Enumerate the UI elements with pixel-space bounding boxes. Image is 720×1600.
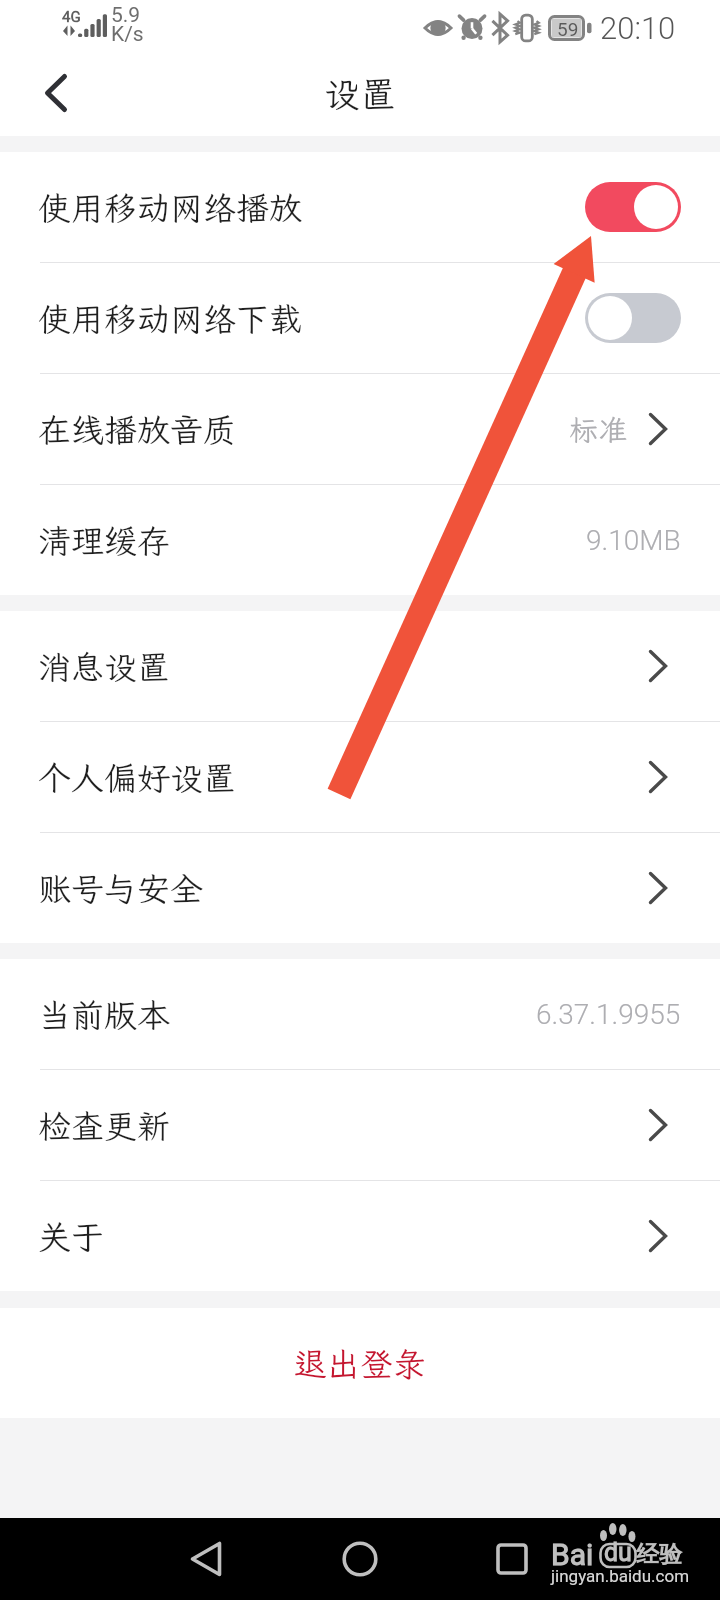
staticText: 使用移动网络下载 bbox=[38, 297, 302, 340]
button[interactable]: 账号与安全 bbox=[0, 833, 720, 943]
staticText: 4G bbox=[62, 8, 81, 26]
button[interactable]: Back bbox=[166, 1524, 246, 1594]
staticText: 账号与安全 bbox=[38, 867, 203, 910]
staticText: 退出登录 bbox=[294, 1342, 426, 1385]
staticText: 9.10MB bbox=[586, 524, 681, 557]
staticText: Bai bbox=[551, 1537, 594, 1572]
button[interactable]: Home bbox=[320, 1524, 400, 1594]
button[interactable]: Recents bbox=[472, 1524, 552, 1594]
staticText: du bbox=[604, 1538, 632, 1567]
button[interactable]: Switch on bbox=[585, 182, 681, 232]
staticText: 经验 bbox=[636, 1540, 682, 1569]
staticText: 标准 bbox=[569, 410, 628, 448]
staticText: jingyan.baidu.com bbox=[551, 1566, 690, 1586]
staticText: 清理缓存 bbox=[38, 519, 170, 562]
button[interactable]: 清理缓存 bbox=[0, 485, 720, 595]
staticText: 关于 bbox=[38, 1215, 104, 1258]
staticText: 当前版本 bbox=[38, 993, 170, 1036]
staticText: K/s bbox=[111, 22, 144, 47]
button[interactable]: 个人偏好设置 bbox=[0, 722, 720, 832]
button[interactable]: 使用移动网络下载 bbox=[0, 263, 720, 373]
staticText: 检查更新 bbox=[38, 1104, 170, 1147]
staticText: 5.9 bbox=[111, 3, 141, 28]
staticText: 个人偏好设置 bbox=[38, 756, 236, 799]
staticText: 在线播放音质 bbox=[38, 408, 236, 451]
button[interactable]: 检查更新 bbox=[0, 1070, 720, 1180]
button[interactable]: 使用移动网络播放 bbox=[0, 152, 720, 262]
staticText: 消息设置 bbox=[38, 645, 170, 688]
button[interactable]: 当前版本 bbox=[0, 959, 720, 1069]
staticText: 使用移动网络播放 bbox=[38, 186, 302, 229]
button[interactable]: 退出登录 bbox=[0, 1308, 720, 1418]
button[interactable]: Back bbox=[16, 55, 96, 131]
button[interactable]: 在线播放音质 bbox=[0, 374, 720, 484]
staticText: 设置 bbox=[324, 70, 397, 117]
button[interactable]: 消息设置 bbox=[0, 611, 720, 721]
button[interactable]: 关于 bbox=[0, 1181, 720, 1291]
staticText: 6.37.1.9955 bbox=[536, 998, 681, 1031]
staticText: 59 bbox=[557, 18, 579, 40]
button[interactable]: Switch off bbox=[585, 293, 681, 343]
staticText: 20:10 bbox=[600, 10, 676, 46]
